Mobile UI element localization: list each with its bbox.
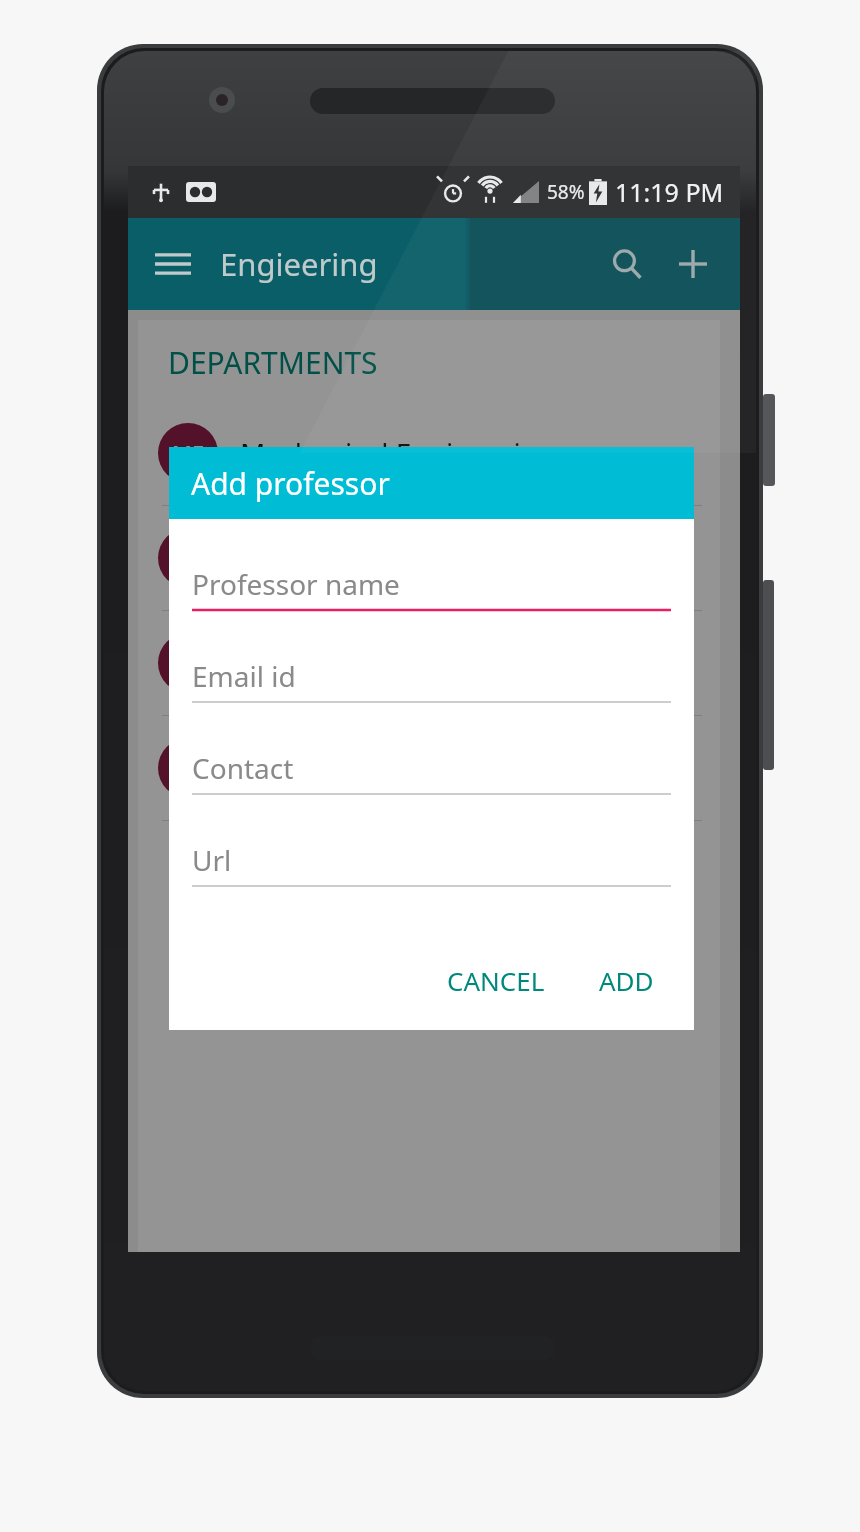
staticText: DEPARTMENTS [168, 342, 378, 383]
staticText: Computer Science [240, 749, 479, 787]
button[interactable]: Add [660, 231, 726, 297]
button[interactable]: Url [192, 841, 671, 889]
button[interactable]: ADD [583, 953, 670, 1008]
staticText: Professor name [192, 565, 400, 603]
staticText: Mechanical Engineering [240, 434, 556, 472]
staticText: Email id [192, 657, 296, 695]
button[interactable]: CANCEL [431, 953, 561, 1008]
staticText: Engieering [220, 243, 378, 285]
staticText: CS [175, 753, 201, 783]
staticText: Add professor [191, 463, 390, 504]
staticText: Url [192, 841, 232, 879]
staticText: EE [176, 648, 201, 678]
staticText: Electrical Engineering [240, 644, 525, 682]
button[interactable]: CE [138, 506, 720, 611]
staticText: 58% [547, 179, 585, 205]
button[interactable]: Email id [192, 657, 671, 705]
staticText: Civil Engineering [240, 539, 461, 577]
button[interactable]: CS [138, 716, 720, 821]
staticText: CANCEL [447, 963, 545, 998]
staticText: ADD [599, 963, 654, 998]
button[interactable]: Open navigation drawer [142, 233, 204, 295]
staticText: ME [172, 438, 205, 468]
staticText: 11:19 PM [615, 175, 724, 209]
button[interactable]: Professor name [192, 565, 671, 613]
button[interactable]: Contact [192, 749, 671, 797]
staticText: Contact [192, 749, 294, 787]
button[interactable]: EE [138, 611, 720, 716]
button[interactable]: Search [594, 231, 660, 297]
button: Add professor [169, 447, 694, 1030]
button[interactable]: ME [138, 401, 720, 506]
